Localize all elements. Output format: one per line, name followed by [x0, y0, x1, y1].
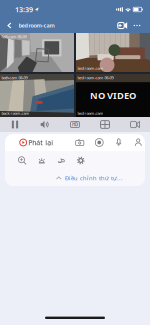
- button[interactable]: Record: [89, 135, 109, 150]
- button[interactable]: Digital zoom: [12, 153, 32, 168]
- button[interactable]: Add camera: [115, 19, 129, 32]
- staticText: bed room-cam: [77, 66, 103, 71]
- button[interactable]: bed room-cam: [18, 19, 54, 32]
- staticText: bed room-cam: [77, 111, 103, 116]
- button[interactable]: Siren: [32, 153, 51, 168]
- staticText: Phát lại: [28, 138, 53, 147]
- button[interactable]: Snapshot: [70, 135, 89, 150]
- button[interactable]: Two-way talk: [109, 135, 128, 150]
- button[interactable]: Mute: [30, 117, 60, 132]
- staticText: back room-cam: [1, 111, 29, 116]
- staticText: 13:39: [15, 5, 33, 14]
- staticText: bed room-cam 06-09: [77, 75, 113, 80]
- button[interactable]: Grid layout: [90, 117, 120, 132]
- button[interactable]: Person detection: [128, 135, 148, 150]
- button[interactable]: Settings: [71, 153, 90, 168]
- button[interactable]: Điều chỉnh thứ tự...: [56, 173, 123, 183]
- button[interactable]: Cloud storage: [51, 153, 71, 168]
- button[interactable]: Single camera: [120, 117, 150, 132]
- staticText: Điều chỉnh thứ tự...: [65, 174, 123, 182]
- staticText: bath-cam 06-09: [1, 75, 27, 80]
- button[interactable]: More options: [131, 20, 143, 31]
- button[interactable]: Pause: [0, 117, 30, 132]
- button[interactable]: Back: [4, 19, 15, 32]
- staticText: hall-cam 06-09: [1, 34, 26, 39]
- staticText: HD: [72, 121, 78, 127]
- button[interactable]: Stream quality: [60, 117, 90, 132]
- staticText: bed room-cam: [18, 22, 54, 29]
- staticText: NO VIDEO: [90, 89, 136, 102]
- button[interactable]: Phát lại: [13, 137, 60, 148]
